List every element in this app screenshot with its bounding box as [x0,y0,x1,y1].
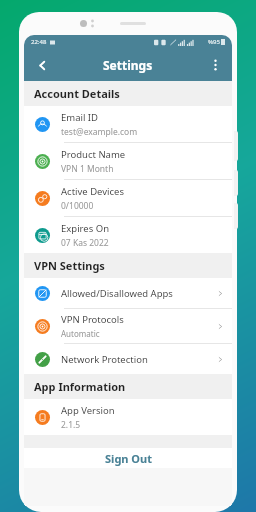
staticText: 2.1.5 [61,419,81,431]
button[interactable]: More options [203,53,227,77]
button[interactable]: Network Protection [24,344,232,374]
staticText: Email ID [61,111,99,124]
staticText: test@example.com [61,126,138,138]
button[interactable]: App Version [24,399,232,435]
staticText: Automatic [61,328,100,339]
button[interactable]: VPN Protocols [24,309,232,343]
staticText: VPN Protocols [61,313,124,326]
staticText: VPN Settings [34,258,105,273]
staticText: Sign Out [105,451,152,466]
button[interactable]: Expires On [24,217,232,253]
staticText: Product Name [61,148,126,161]
staticText: 22:48 [31,38,47,46]
staticText: Settings [103,57,153,73]
button[interactable]: Sign Out [24,448,232,468]
staticText: Account Details [34,86,120,101]
staticText: Expires On [61,222,110,235]
staticText: Active Devices [61,185,125,198]
staticText: %95 [208,38,220,46]
staticText: 07 Kas 2022 [61,237,109,249]
staticText: App Information [34,379,126,394]
staticText: Allowed/Disallowed Apps [61,287,173,300]
staticText: 0/10000 [61,200,94,212]
button[interactable]: Active Devices [24,180,232,216]
button[interactable]: Email ID [24,106,232,142]
button[interactable]: Product Name [24,143,232,179]
staticText: VPN 1 Month [61,163,114,175]
button[interactable]: Allowed/Disallowed Apps [24,278,232,308]
staticText: Network Protection [61,353,148,366]
staticText: App Version [61,404,115,417]
button[interactable]: Back [29,52,55,78]
